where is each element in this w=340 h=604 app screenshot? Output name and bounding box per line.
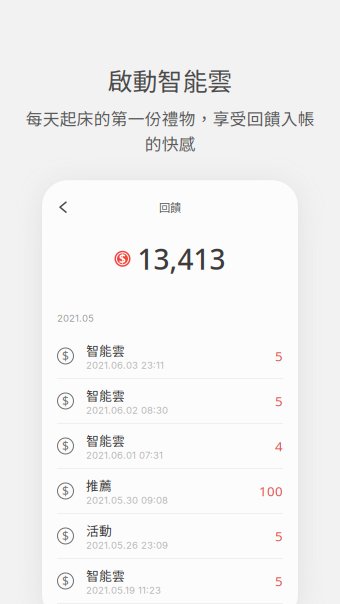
staticText: 活動: [86, 521, 112, 539]
staticText: 4: [275, 437, 283, 455]
button[interactable]: $: [57, 469, 283, 514]
staticText: 5: [275, 572, 283, 590]
staticText: 2021.06.02 08:30: [86, 404, 168, 416]
staticText: $: [62, 483, 69, 499]
button[interactable]: Back: [55, 198, 71, 216]
staticText: 5: [275, 347, 283, 365]
staticText: 100: [259, 482, 283, 500]
staticText: 2021.05.30 09:08: [86, 494, 168, 506]
staticText: 2021.05.19 11:23: [86, 584, 161, 596]
staticText: 智能雲: [86, 341, 125, 359]
staticText: 13,413: [137, 240, 225, 277]
button[interactable]: $: [57, 559, 283, 604]
staticText: 2021.06.03 23:11: [86, 359, 164, 371]
button[interactable]: $: [57, 424, 283, 469]
staticText: $: [119, 251, 126, 267]
staticText: $: [62, 348, 69, 364]
staticText: 5: [275, 392, 283, 410]
staticText: 智能雲: [86, 566, 125, 584]
button[interactable]: $: [57, 379, 283, 424]
staticText: 回饋: [159, 199, 181, 215]
staticText: 2021.05: [57, 312, 94, 324]
staticText: $: [62, 573, 69, 589]
staticText: 智能雲: [86, 386, 125, 404]
staticText: 2021.06.01 07:31: [86, 449, 163, 461]
staticText: 推薦: [86, 476, 112, 494]
staticText: $: [62, 438, 69, 454]
staticText: 5: [275, 527, 283, 545]
staticText: $: [62, 528, 69, 544]
staticText: 啟動智能雲: [107, 62, 232, 98]
staticText: $: [62, 393, 69, 409]
staticText: 2021.05.26 23:09: [86, 539, 168, 551]
button[interactable]: $: [57, 514, 283, 559]
button[interactable]: $: [57, 334, 283, 379]
staticText: 每天起床的第一份禮物，享受回饋入帳 的快感: [25, 106, 314, 155]
staticText: 智能雲: [86, 431, 125, 449]
